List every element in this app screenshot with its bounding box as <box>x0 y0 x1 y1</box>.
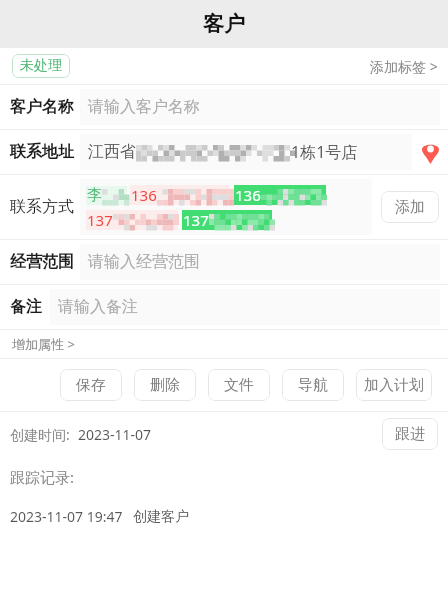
button[interactable]: 跟进 <box>382 418 438 450</box>
staticText: 请输入客户名称 <box>88 97 200 117</box>
staticText: 未处理 <box>20 57 62 75</box>
staticText: 创建时间: <box>10 425 70 444</box>
staticText: 136 <box>131 185 157 205</box>
staticText: 增加属性 > <box>12 335 75 353</box>
staticText: 备注 <box>10 297 42 317</box>
staticText: 客户名称 <box>10 97 74 117</box>
button[interactable]: 请输入经营范围 <box>80 244 440 280</box>
staticText: 2023-11-07 19:47 <box>10 507 123 526</box>
button[interactable]: 请输入客户名称 <box>80 89 440 125</box>
staticText: 导航 <box>298 376 328 395</box>
staticText: 请输入备注 <box>58 297 138 317</box>
staticText: 江西省 <box>88 142 136 162</box>
staticText: 1栋1号店 <box>291 141 358 163</box>
staticText: 文件 <box>224 376 254 395</box>
button[interactable]: 定位 <box>412 130 448 174</box>
staticText: 创建客户 <box>133 508 189 526</box>
staticText: 请输入经营范围 <box>88 252 200 272</box>
staticText: 加入计划 <box>364 376 424 395</box>
button[interactable]: 李 <box>80 179 372 235</box>
staticText: 137 <box>183 210 209 230</box>
staticText: 添加 <box>395 198 425 217</box>
staticText: 跟进 <box>395 425 425 444</box>
button[interactable]: 添加 <box>381 191 439 223</box>
button[interactable]: 加入计划 <box>356 369 432 401</box>
button[interactable]: 江西省 <box>80 134 412 170</box>
staticText: 李 <box>87 186 102 205</box>
staticText: 删除 <box>150 376 180 395</box>
staticText: 联系地址 <box>10 142 74 162</box>
button[interactable]: 删除 <box>134 369 196 401</box>
staticText: 添加标签 > <box>370 57 438 76</box>
button[interactable]: 未处理 <box>12 54 70 78</box>
button[interactable]: 增加属性 > <box>10 331 77 357</box>
button[interactable]: 请输入备注 <box>50 289 440 325</box>
button[interactable]: 导航 <box>282 369 344 401</box>
button[interactable]: 文件 <box>208 369 270 401</box>
button[interactable]: 添加标签 > <box>360 53 448 80</box>
staticText: 跟踪记录: <box>10 467 75 487</box>
staticText: 保存 <box>76 376 106 395</box>
staticText: 客户 <box>203 11 245 37</box>
staticText: 经营范围 <box>10 252 74 272</box>
staticText: 联系方式 <box>10 197 74 217</box>
staticText: 136 <box>235 185 261 205</box>
staticText: 2023-11-07 <box>78 425 152 444</box>
staticText: 137 <box>87 210 113 230</box>
button[interactable]: 保存 <box>60 369 122 401</box>
